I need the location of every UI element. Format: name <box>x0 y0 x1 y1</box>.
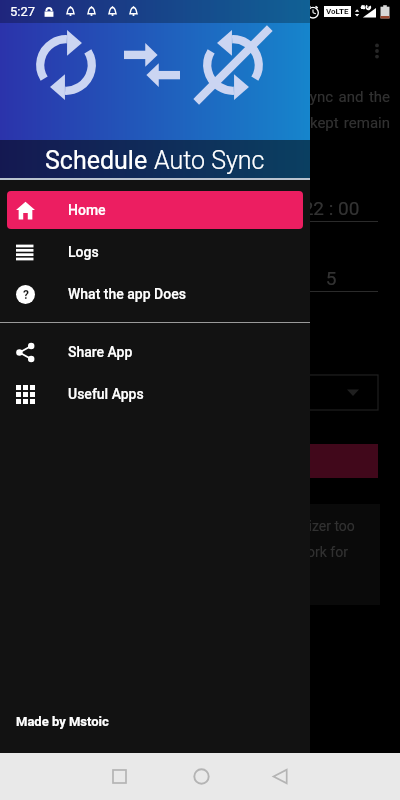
staticText: Logs <box>68 244 99 260</box>
button[interactable]: Back <box>261 756 302 797</box>
button[interactable]: Recent apps <box>99 756 140 797</box>
staticText: Duration (hours) <box>22 269 138 288</box>
button[interactable] <box>22 375 378 410</box>
staticText: Please whitelist this app in your batter… <box>26 518 368 586</box>
button[interactable]: SCHEDULE <box>22 444 378 478</box>
staticText: Share App <box>68 344 133 360</box>
button[interactable]: Home <box>181 756 222 797</box>
staticText: What the app Does <box>68 286 186 302</box>
staticText: Select the time when you want to turn on… <box>12 88 390 157</box>
staticText: Auto Sync <box>154 146 265 175</box>
button[interactable]: Share App <box>7 333 303 371</box>
staticText: Useful Apps <box>68 386 144 402</box>
button[interactable]: Home <box>7 191 303 229</box>
staticText: VoLTE <box>326 7 349 16</box>
button[interactable]: ? <box>7 275 303 313</box>
staticText: Made by Mstoic <box>16 714 109 729</box>
staticText: Select time <box>22 199 102 218</box>
staticText: 22 : 00 <box>285 197 377 219</box>
staticText: 5 <box>285 267 377 289</box>
staticText: Schedule <box>45 146 154 175</box>
staticText: ? <box>23 288 29 302</box>
button[interactable]: Logs <box>7 233 303 271</box>
staticText: 5:27 <box>10 4 36 19</box>
button[interactable]: More options <box>364 38 390 64</box>
button[interactable]: Useful Apps <box>7 375 303 413</box>
staticText: Home <box>68 202 106 218</box>
